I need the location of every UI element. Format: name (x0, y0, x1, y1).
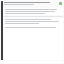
button[interactable] (4, 18, 63, 60)
button[interactable] (4, 8, 63, 15)
button[interactable]: Profile (59, 2, 62, 5)
